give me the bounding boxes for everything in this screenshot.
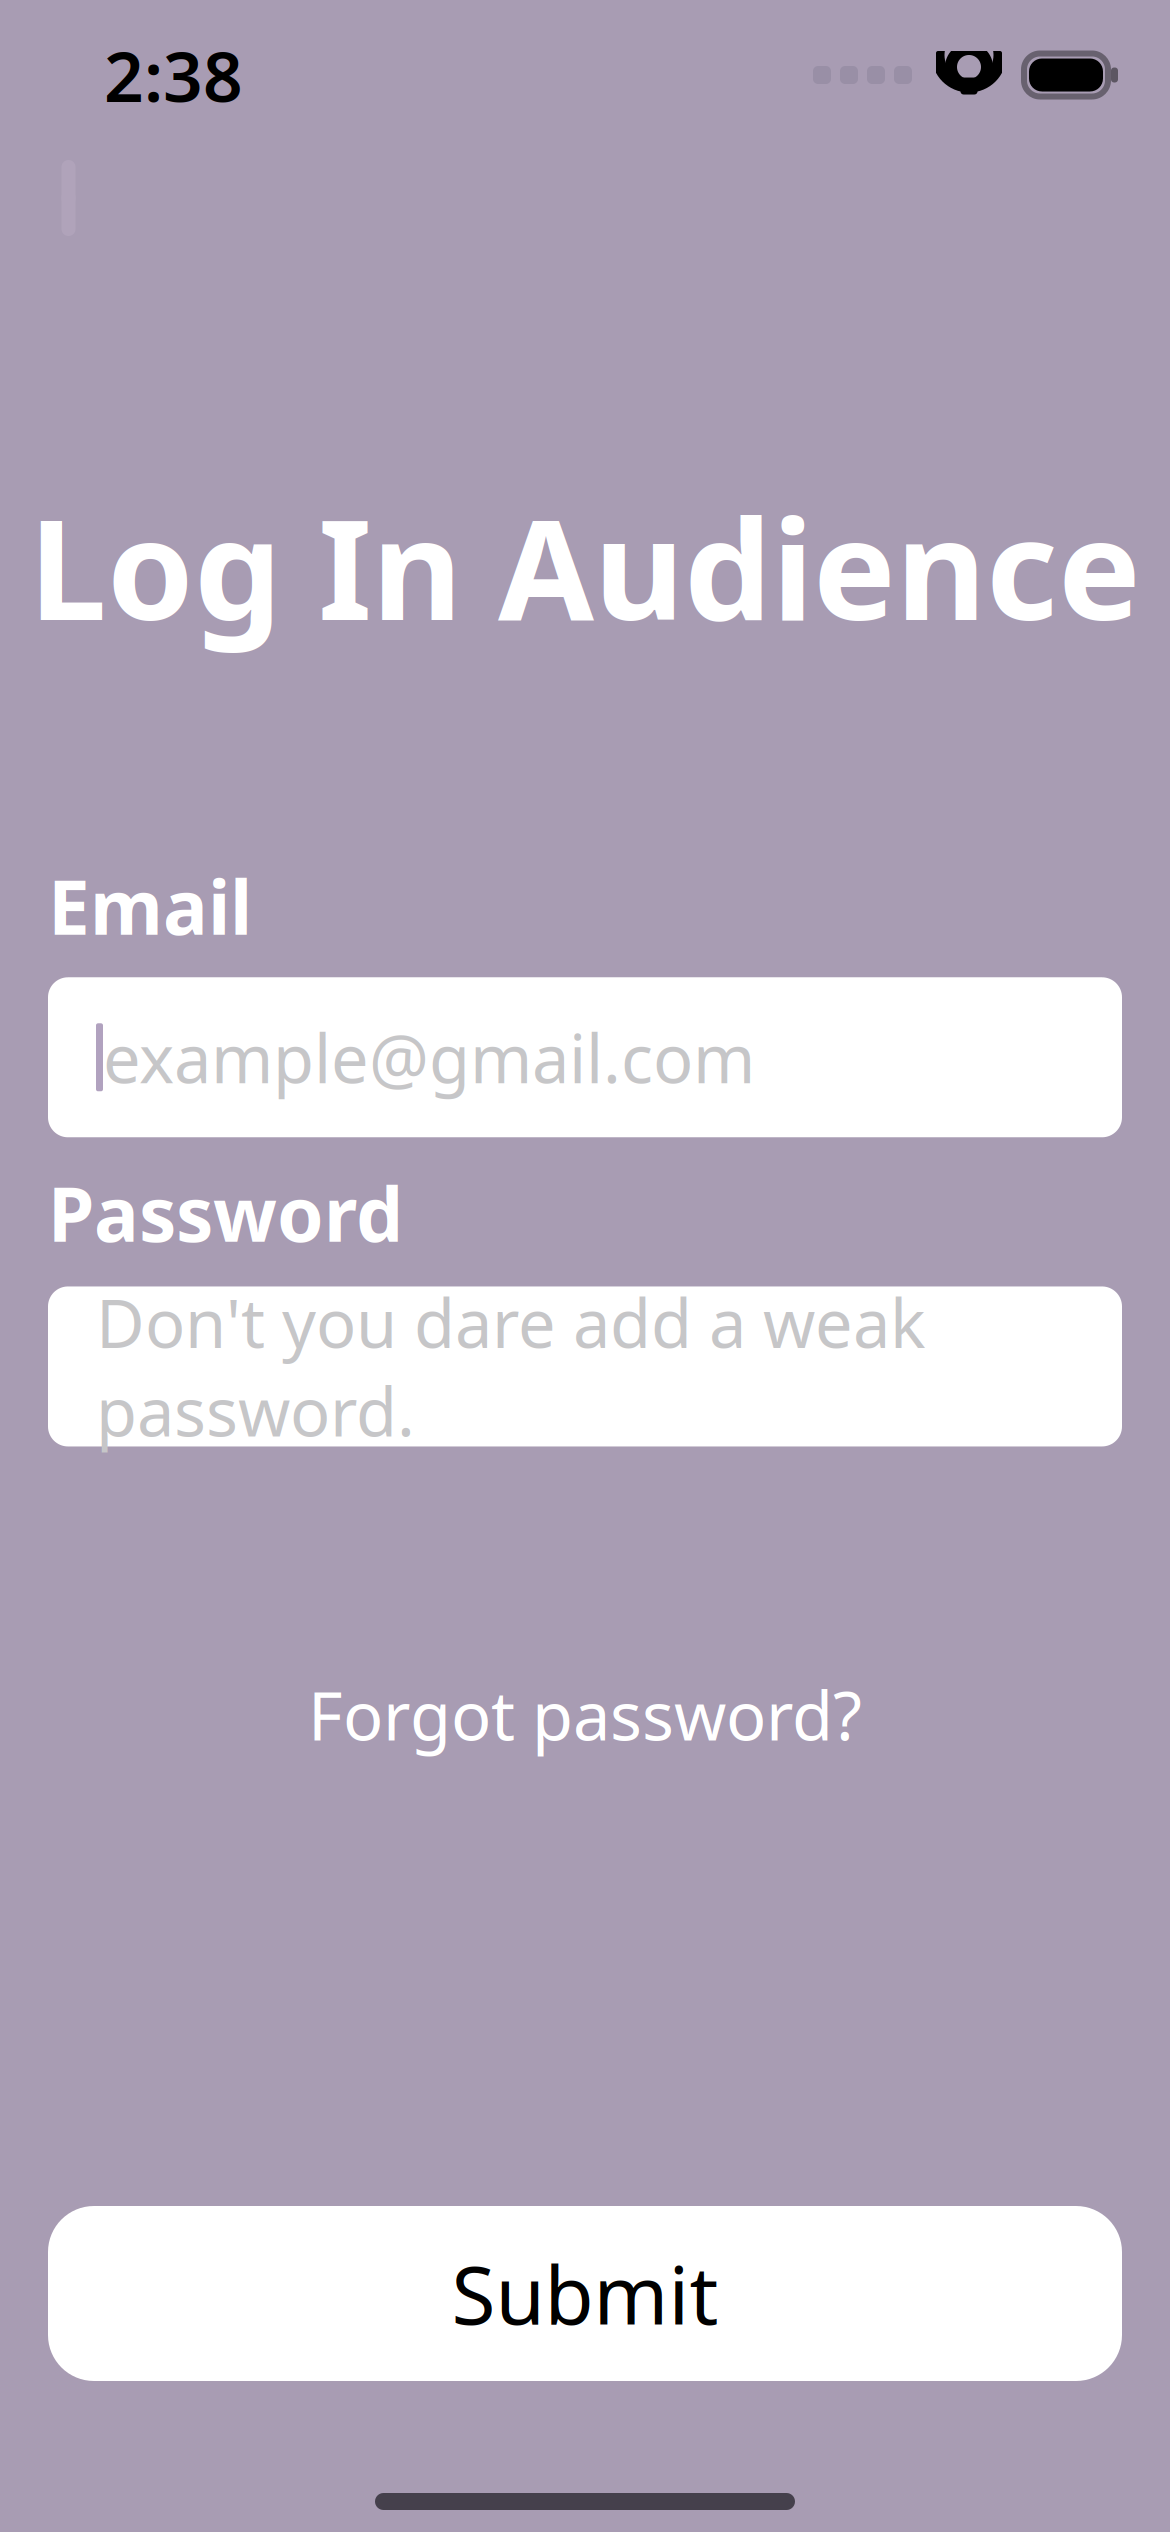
staticText: Log In Audience <box>29 474 1141 658</box>
staticText: Don't you dare add a weak password. <box>96 1278 926 1455</box>
staticText: Email <box>48 856 252 955</box>
button[interactable]: Submit <box>0 2206 1170 2381</box>
button[interactable]: Forgot password? <box>280 1656 890 1773</box>
staticText: 2:38 <box>104 29 243 121</box>
staticText: Submit <box>451 2240 718 2347</box>
staticText: Forgot password? <box>308 1670 862 1759</box>
staticText: example@gmail.com <box>103 1013 755 1101</box>
staticText: Password <box>48 1163 403 1262</box>
button[interactable]: example@gmail.com <box>0 977 1170 1137</box>
button[interactable]: Don't you dare add a weak password. <box>0 1286 1170 1446</box>
